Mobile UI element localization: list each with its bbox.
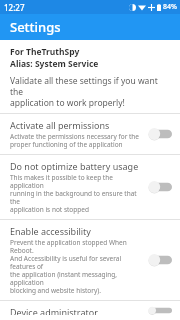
staticText: Validate all these settings if you want …	[10, 75, 172, 108]
staticText: Settings	[10, 18, 61, 36]
staticText: 84%	[163, 2, 177, 12]
button[interactable]: Toggle setting	[148, 180, 172, 194]
button[interactable]: Toggle setting	[148, 127, 172, 141]
button[interactable]: Device administrator	[0, 301, 180, 320]
staticText: Prevent the application stopped When Reb…	[10, 238, 142, 295]
button[interactable]: Enable accessibility	[0, 220, 180, 300]
staticText: Activate all permissions	[10, 119, 110, 131]
staticText: For TheTruthSpy	[10, 46, 80, 58]
button[interactable]: Activate all permissions	[0, 114, 180, 154]
staticText: This makes it possible to keep the appli…	[10, 173, 142, 214]
staticText: Device administrator	[10, 306, 98, 315]
staticText: Do not optimize battery usage	[10, 160, 139, 172]
staticText: Enable accessibility	[10, 225, 91, 237]
button[interactable]: Toggle setting	[148, 253, 172, 267]
staticText: 12:27	[4, 2, 25, 13]
staticText: Activate the permissions necessary for t…	[10, 132, 140, 149]
button[interactable]: Do not optimize battery usage	[0, 155, 180, 219]
staticText: Alias: System Service	[10, 58, 99, 70]
button[interactable]: Toggle setting	[148, 306, 172, 315]
